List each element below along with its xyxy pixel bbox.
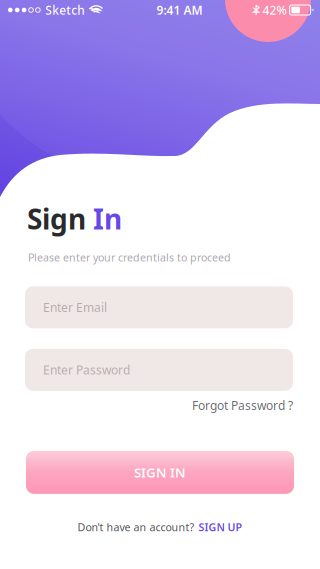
staticText: Forgot Password ? [192, 397, 293, 413]
button[interactable]: Don't have an account? [0, 518, 320, 536]
staticText: Don't have an account? [77, 520, 194, 534]
button[interactable]: Forgot Password ? [0, 391, 293, 413]
button[interactable]: SIGN IN [0, 413, 294, 494]
staticText: SIGN IN [134, 463, 186, 481]
button[interactable]: Enter Password [25, 349, 293, 391]
staticText: 9:41 AM [156, 2, 202, 18]
staticText: Please enter your credentials to proceed [28, 250, 231, 264]
staticText: Enter Email [43, 299, 107, 315]
staticText: SIGN UP [198, 520, 242, 534]
staticText: 42% [263, 2, 287, 18]
staticText: Enter Password [43, 362, 130, 378]
staticText: Sign [27, 200, 93, 237]
staticText: In [93, 200, 122, 237]
button[interactable]: Enter Email [25, 286, 293, 328]
staticText: Sketch [45, 2, 85, 18]
